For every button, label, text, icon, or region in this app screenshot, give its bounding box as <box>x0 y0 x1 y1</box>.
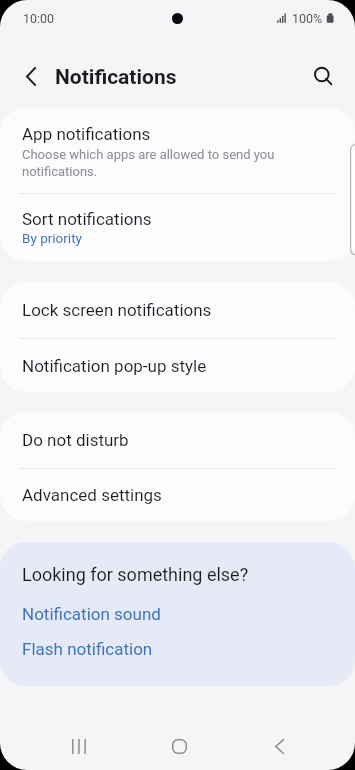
staticText: Sort notifications <box>22 209 152 229</box>
staticText: App notifications <box>22 124 151 144</box>
staticText: Notification pop-up style <box>22 356 207 376</box>
button[interactable]: Back <box>11 56 51 96</box>
button[interactable]: Back <box>255 722 303 770</box>
staticText: Lock screen notifications <box>22 300 212 320</box>
button[interactable]: Notification pop-up style <box>0 339 355 392</box>
staticText: Advanced settings <box>22 485 162 505</box>
button[interactable]: Do not disturb <box>0 412 355 468</box>
staticText: Notifications <box>55 65 177 89</box>
button[interactable]: Search <box>302 55 342 95</box>
button[interactable]: Flash notification <box>22 639 153 659</box>
staticText: By priority <box>22 230 82 246</box>
button[interactable]: Notification sound <box>22 604 161 624</box>
button[interactable]: App notifications <box>0 108 355 193</box>
staticText: Do not disturb <box>22 430 129 450</box>
button[interactable]: Sort notifications <box>0 194 355 261</box>
staticText: 10:00 <box>23 11 55 26</box>
staticText: Choose which apps are allowed to send yo… <box>22 146 284 180</box>
button[interactable]: Lock screen notifications <box>0 282 355 338</box>
button[interactable]: Home <box>155 722 203 770</box>
button[interactable]: Advanced settings <box>0 469 355 521</box>
staticText: Looking for something else? <box>22 564 249 585</box>
button[interactable]: Recent apps <box>55 722 103 770</box>
staticText: 100% <box>292 11 323 26</box>
